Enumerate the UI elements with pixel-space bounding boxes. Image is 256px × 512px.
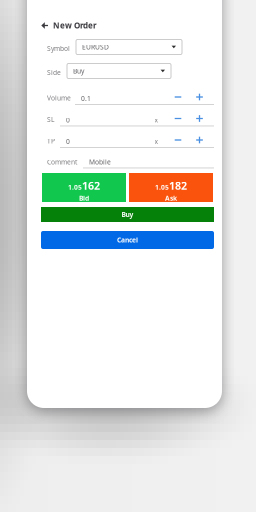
staticText: Symbol [47,44,70,53]
staticText: x [154,137,158,146]
button[interactable]: Increase Volume [193,91,206,102]
staticText: New Order [53,20,97,31]
button[interactable]: Buy [67,63,171,78]
staticText: TP [47,136,55,145]
button[interactable]: Decrease SL [171,113,184,124]
staticText: 0 [66,137,70,146]
staticText: SL [47,115,54,124]
staticText: Comment [47,157,77,166]
staticText: x [154,115,158,124]
button[interactable]: Increase SL [193,113,206,124]
button[interactable]: Buy [41,207,214,222]
staticText: EURUSD [82,43,109,51]
staticText: 1.05 [68,183,82,192]
staticText: 162 [82,178,100,193]
staticText: 0 [66,115,70,124]
staticText: Side [47,68,61,77]
button[interactable]: Cancel [41,231,214,249]
staticText: Volume [47,93,71,102]
button[interactable]: 1.05 [42,173,126,202]
button[interactable]: Decrease Volume [171,91,184,102]
staticText: Buy [121,210,133,219]
button[interactable]: EURUSD [76,39,182,54]
staticText: 1.05 [155,183,169,192]
button[interactable]: Increase TP [193,134,206,145]
button[interactable]: Decrease TP [171,134,184,145]
button[interactable]: 1.05 [129,173,213,202]
staticText: Bid [79,194,89,203]
staticText: 182 [169,178,187,193]
staticText: Mobile [89,157,111,166]
staticText: Ask [165,194,177,203]
staticText: Cancel [117,236,138,244]
button[interactable]: New Order [27,18,222,32]
staticText: 0.1 [81,94,91,103]
staticText: Buy [73,67,84,75]
